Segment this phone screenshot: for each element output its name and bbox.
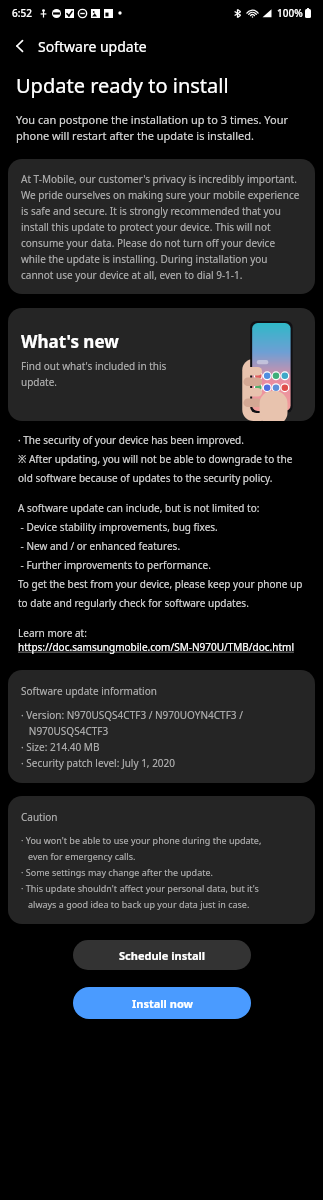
button[interactable]: What's new: [8, 308, 315, 421]
staticText: Install now: [132, 996, 193, 1011]
staticText: Update ready to install: [16, 72, 229, 99]
staticText: Schedule install: [119, 948, 206, 963]
staticText: · You won't be able to use your phone du…: [21, 834, 262, 910]
staticText: Software update information: [21, 684, 157, 698]
staticText: 100%: [277, 6, 303, 20]
button[interactable]: Install now: [73, 987, 251, 1019]
staticText: Software update: [38, 37, 147, 56]
staticText: 6:52: [12, 6, 32, 20]
staticText: Learn more at:: [18, 626, 87, 640]
staticText: Find out what's included in this update.: [21, 359, 181, 388]
staticText: What's new: [21, 330, 119, 353]
button[interactable]: Back: [0, 26, 40, 66]
button[interactable]: https://doc.samsungmobile.com/SM-N970U/T…: [18, 640, 294, 654]
staticText: Caution: [21, 810, 58, 824]
staticText: At T-Mobile, our customer's privacy is i…: [21, 172, 302, 281]
staticText: · Version: N970USQS4CTF3 / N970UOYN4CTF3…: [21, 708, 243, 769]
staticText: A software update can include, but is no…: [18, 501, 309, 610]
staticText: · The security of your device has been i…: [18, 433, 309, 485]
staticText: You can postpone the installation up to …: [16, 112, 311, 143]
button[interactable]: Schedule install: [73, 940, 251, 970]
